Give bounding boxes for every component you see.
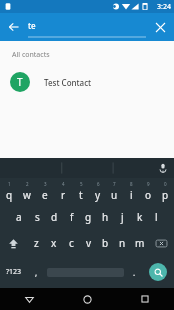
staticText: . xyxy=(133,267,136,278)
button[interactable]: h xyxy=(97,204,114,230)
button[interactable]: T xyxy=(0,68,174,96)
button[interactable]: Home xyxy=(58,288,116,310)
staticText: 9 xyxy=(147,181,150,187)
staticText: n xyxy=(119,236,126,250)
button[interactable]: n xyxy=(114,230,131,256)
staticText: v xyxy=(86,236,92,250)
button[interactable]: 5 xyxy=(72,178,89,204)
staticText: j xyxy=(121,210,124,224)
button[interactable]: , xyxy=(28,256,44,288)
button[interactable]: 8 xyxy=(123,178,140,204)
button[interactable]: 2 xyxy=(18,178,36,204)
staticText: o xyxy=(145,188,152,202)
button[interactable]: . xyxy=(126,256,142,288)
staticText: 0 xyxy=(164,181,167,187)
staticText: 2 xyxy=(26,181,29,187)
staticText: m xyxy=(135,236,145,250)
staticText: e xyxy=(42,188,48,202)
button[interactable]: k xyxy=(131,204,148,230)
staticText: l xyxy=(155,210,158,224)
button[interactable]: Back xyxy=(0,13,28,41)
button[interactable]: Clear search xyxy=(146,13,174,41)
button[interactable]: 0 xyxy=(157,178,174,204)
button[interactable]: j xyxy=(114,204,131,230)
staticText: 3:24 xyxy=(157,2,171,12)
staticText: 4 xyxy=(62,181,65,187)
button[interactable]: 3 xyxy=(36,178,54,204)
staticText: p xyxy=(162,188,169,202)
staticText: q xyxy=(6,188,13,202)
staticText: s xyxy=(35,210,40,224)
button[interactable]: ?123 xyxy=(0,256,28,288)
staticText: 7 xyxy=(113,181,116,187)
button[interactable]: v xyxy=(80,230,97,256)
staticText: h xyxy=(102,210,109,224)
staticText: x xyxy=(51,236,57,250)
button[interactable]: 7 xyxy=(106,178,123,204)
staticText: All contacts xyxy=(12,50,50,60)
staticText: , xyxy=(35,267,38,278)
button[interactable]: x xyxy=(45,230,63,256)
button[interactable]: a xyxy=(10,204,28,230)
button[interactable]: m xyxy=(131,230,148,256)
staticText: w xyxy=(23,188,31,202)
button[interactable]: z xyxy=(27,230,45,256)
button[interactable]: Shift xyxy=(0,230,27,256)
staticText: a xyxy=(16,210,22,224)
button[interactable]: 4 xyxy=(54,178,72,204)
button[interactable]: s xyxy=(28,204,46,230)
button[interactable]: c xyxy=(63,230,80,256)
button[interactable]: 9 xyxy=(140,178,157,204)
button[interactable]: Back xyxy=(0,288,58,310)
button[interactable]: d xyxy=(46,204,63,230)
staticText: z xyxy=(34,236,39,250)
staticText: g xyxy=(85,210,92,224)
staticText: te xyxy=(28,20,36,31)
staticText: 8 xyxy=(130,181,133,187)
staticText: u xyxy=(111,188,118,202)
staticText: k xyxy=(137,210,143,224)
button[interactable]: Voice input xyxy=(152,158,174,178)
staticText: r xyxy=(61,188,66,202)
staticText: i xyxy=(130,188,133,202)
button[interactable]: l xyxy=(148,204,165,230)
button[interactable]: g xyxy=(80,204,97,230)
staticText: f xyxy=(70,210,74,224)
staticText: T xyxy=(17,75,23,89)
button[interactable]: f xyxy=(63,204,80,230)
staticText: 5 xyxy=(80,181,83,187)
staticText: 6 xyxy=(97,181,100,187)
staticText: b xyxy=(102,236,109,250)
staticText: ?123 xyxy=(6,267,22,277)
button[interactable]: te xyxy=(28,13,146,41)
staticText: 3 xyxy=(44,181,47,187)
staticText: c xyxy=(69,236,74,250)
staticText: y xyxy=(95,188,101,202)
staticText: 1 xyxy=(8,181,11,187)
button[interactable]: 6 xyxy=(89,178,106,204)
button[interactable]: Search xyxy=(142,256,174,288)
button[interactable]: Space xyxy=(44,256,126,288)
button[interactable]: Backspace xyxy=(148,230,174,256)
button[interactable]: b xyxy=(97,230,114,256)
staticText: d xyxy=(51,210,58,224)
staticText: Test Contact xyxy=(44,77,92,88)
staticText: t xyxy=(79,188,83,202)
button[interactable]: 1 xyxy=(0,178,18,204)
button[interactable]: Recent apps xyxy=(116,288,174,310)
